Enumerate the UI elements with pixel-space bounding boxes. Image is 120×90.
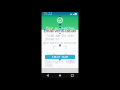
button[interactable]: Recent apps <box>66 73 78 78</box>
staticText: Please scan the code shown on <box>45 34 74 41</box>
button[interactable]: Back <box>41 73 54 78</box>
staticText: Didn't get it? RESEND CODE <box>45 60 75 67</box>
staticText: 10:24 <box>43 12 52 16</box>
button[interactable]: Didn't get it? RESEND CODE <box>45 60 75 67</box>
button[interactable]: Home <box>54 73 66 78</box>
staticText: Your account has been verified <box>45 25 74 36</box>
staticText: your screen to continue <box>43 41 77 44</box>
staticText: VERIFY NOW <box>51 55 68 59</box>
button[interactable]: VERIFY NOW <box>45 55 75 59</box>
staticText: Email verification <box>43 28 76 33</box>
